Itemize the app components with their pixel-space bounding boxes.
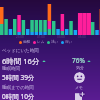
staticText: 睡眠までの時間 [2,85,34,91]
staticText: 0時間 10分 [2,92,35,100]
button[interactable]: メモを追加 [75,91,85,100]
staticText: 5時間 39分 [2,73,35,82]
staticText: 23:00 [16,35,24,39]
button[interactable]: 浅い [47,40,59,45]
staticText: 覚醒 [23,40,31,45]
staticText: 気分 [76,65,84,70]
button[interactable]: レム [33,40,45,45]
staticText: ベッドにいた時間 [2,48,39,54]
staticText: 03:00 [57,35,65,39]
staticText: 01:00 [37,35,45,39]
staticText: 05:00 [78,35,86,39]
button[interactable]: 気分を記録 [74,72,85,83]
staticText: 睡眠時間 [2,66,20,72]
staticText: メモ [75,85,84,90]
staticText: レム [37,40,45,45]
staticText: 浅い [51,40,59,45]
staticText: 6時間 16分 [2,56,40,66]
staticText: 深い [65,40,73,45]
button[interactable]: 覚醒 [19,40,31,45]
staticText: 76% [72,56,85,65]
button[interactable]: 深い [61,40,73,45]
